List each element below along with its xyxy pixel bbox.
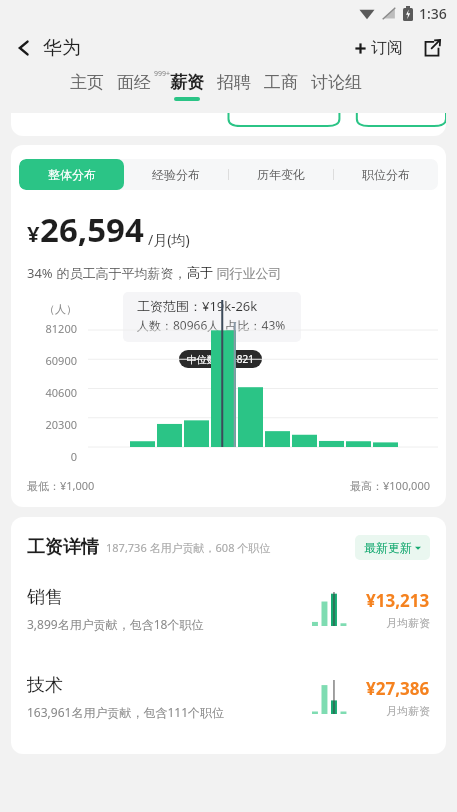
button[interactable]: 面经 [117,72,151,93]
button[interactable]: 讨论组 [311,72,362,93]
button[interactable]: 工商 [264,72,298,93]
staticText: 34% [27,264,53,282]
staticText: 3,899名用户贡献，包含18个职位 [27,616,204,632]
staticText: 最高：¥100,000 [350,478,430,493]
staticText: 历年变化 [257,167,305,182]
staticText: 20300 [45,417,77,432]
staticText: 1:36 [419,4,447,23]
button[interactable]: 技术 [11,674,446,720]
staticText: /月(均) [148,230,190,249]
button[interactable]: 薪资 [170,72,204,101]
staticText: 中位数¥24,821 [187,352,254,366]
staticText: 讨论组 [311,72,362,93]
staticText: 经验分布 [152,167,200,182]
staticText: 工资范围：¥19k-26k [137,297,258,315]
staticText: ¥13,213 [366,589,430,612]
staticText: 40600 [45,385,77,400]
staticText: 销售 [27,586,63,609]
staticText: 面经 [117,72,151,93]
button[interactable]: 订阅 [351,34,405,62]
button[interactable]: 销售 [11,586,446,632]
staticText: 人数：80966人 占比：43% [137,317,286,333]
staticText: 技术 [27,674,63,697]
staticText: （人） [44,302,77,316]
button[interactable]: 职位分布 [334,159,438,190]
staticText: 薪资 [170,72,204,93]
staticText: 187,736 名用户贡献，608 个职位 [106,540,271,555]
staticText: 高于 [187,264,213,280]
staticText: 订阅 [371,38,403,58]
staticText: 的员工高于平均薪资， [53,264,187,282]
staticText: 81200 [45,321,77,336]
staticText: 163,961名用户贡献，包含111个职位 [27,704,224,720]
staticText: 60900 [45,353,77,368]
staticText: 26,594 [40,207,144,252]
staticText: 0 [70,449,77,464]
button[interactable]: 招聘 [217,72,251,93]
staticText: 月均薪资 [386,704,430,718]
button[interactable]: 主页 [70,72,104,93]
button[interactable]: Share [419,35,445,61]
other: Back [16,38,32,58]
staticText: ¥27,386 [366,677,430,700]
staticText: 月均薪资 [386,616,430,630]
staticText: 最低：¥1,000 [27,478,95,493]
button[interactable]: Back [12,32,85,64]
staticText: 999+ [154,69,171,79]
staticText: 最新更新 [364,540,412,555]
button[interactable]: 经验分布 [124,159,228,190]
staticText: 主页 [70,72,104,93]
staticText: 职位分布 [362,167,410,182]
staticText: 工商 [264,72,298,93]
staticText: 同行业公司 [213,264,282,282]
button[interactable]: 历年变化 [229,159,333,190]
staticText: 华为 [43,36,81,60]
staticText: 整体分布 [48,167,96,182]
staticText: ¥ [27,218,40,248]
button[interactable]: 最新更新 [355,535,430,560]
staticText: 工资详情 [27,536,99,559]
button[interactable]: 整体分布 [19,159,124,190]
staticText: 招聘 [217,72,251,93]
